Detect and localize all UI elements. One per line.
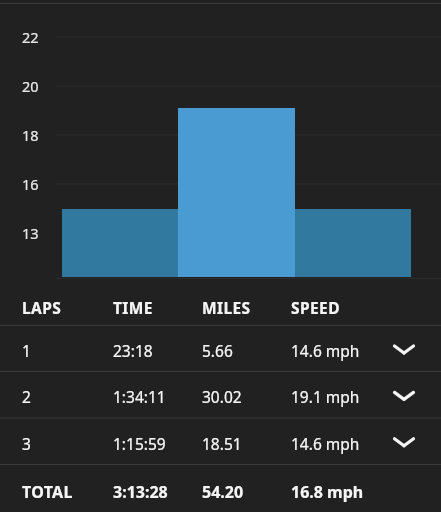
button[interactable]: Expand lap 3 bbox=[387, 425, 421, 459]
staticText: 20 bbox=[22, 76, 39, 96]
staticText: TOTAL bbox=[22, 481, 73, 503]
staticText: 2 bbox=[22, 386, 31, 407]
staticText: 1:15:59 bbox=[113, 433, 166, 454]
staticText: 23:18 bbox=[113, 340, 153, 361]
button[interactable]: 3 bbox=[0, 419, 441, 465]
staticText: TIME bbox=[113, 297, 153, 318]
staticText: 14.6 mph bbox=[291, 340, 360, 361]
staticText: SPEED bbox=[291, 297, 340, 318]
staticText: LAPS bbox=[22, 297, 62, 318]
staticText: 3 bbox=[22, 433, 31, 454]
staticText: 1:34:11 bbox=[113, 386, 166, 407]
staticText: 5.66 bbox=[202, 340, 233, 361]
staticText: 14.6 mph bbox=[291, 433, 360, 454]
staticText: 22 bbox=[22, 27, 39, 47]
staticText: 3:13:28 bbox=[113, 481, 168, 503]
staticText: 16 bbox=[22, 174, 39, 194]
button[interactable]: 2 bbox=[0, 372, 441, 418]
staticText: 16.8 mph bbox=[291, 481, 364, 503]
button[interactable]: 1 bbox=[0, 326, 441, 372]
staticText: 18 bbox=[22, 125, 39, 145]
button[interactable]: Expand lap 2 bbox=[387, 378, 421, 412]
staticText: 19.1 mph bbox=[291, 386, 360, 407]
staticText: 18.51 bbox=[202, 433, 242, 454]
staticText: 1 bbox=[22, 340, 31, 361]
staticText: 13 bbox=[22, 223, 39, 243]
staticText: MILES bbox=[202, 297, 251, 318]
staticText: 30.02 bbox=[202, 386, 242, 407]
button[interactable]: Expand lap 1 bbox=[387, 332, 421, 366]
staticText: 54.20 bbox=[202, 481, 244, 503]
